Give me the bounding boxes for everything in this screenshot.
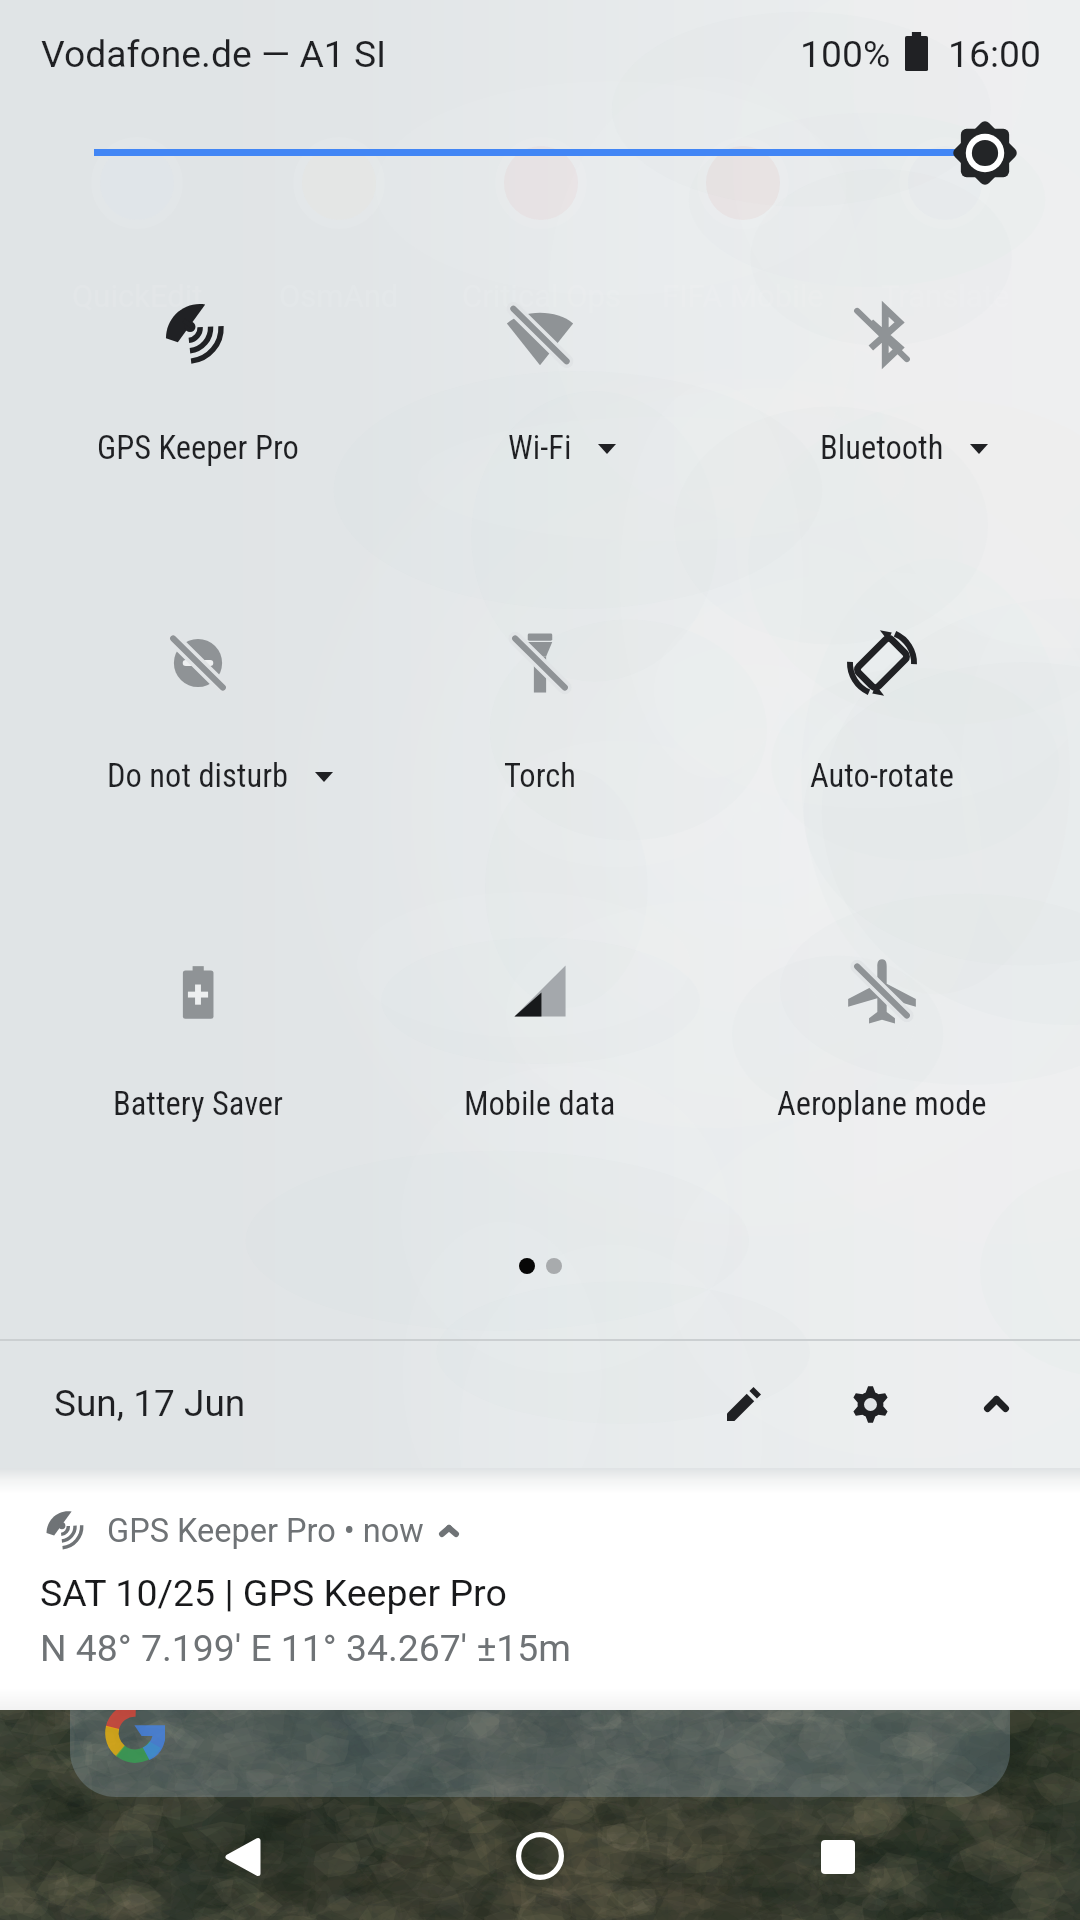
button[interactable]: Mobile data xyxy=(369,861,711,1189)
button[interactable]: Home xyxy=(470,1821,610,1891)
button[interactable]: Auto-rotate xyxy=(711,533,1053,861)
button[interactable]: Battery Saver xyxy=(27,861,369,1189)
staticText: Mobile data xyxy=(464,1085,616,1123)
button[interactable]: Wi-Fi xyxy=(369,205,711,533)
button[interactable]: Aeroplane mode xyxy=(711,861,1053,1189)
staticText: Critical Ops xyxy=(462,278,621,314)
staticText: SAT 10/25 | GPS Keeper Pro xyxy=(40,1571,507,1615)
staticText: Vodafone.de — A1 SI xyxy=(41,32,387,76)
staticText: QuickEdit xyxy=(72,278,203,314)
staticText: Wi-Fi xyxy=(508,429,572,467)
button[interactable]: Back xyxy=(172,1822,312,1892)
button[interactable]: Settings xyxy=(825,1359,915,1449)
staticText: Aeroplane mode xyxy=(777,1085,987,1123)
button[interactable]: Collapse xyxy=(951,1359,1041,1449)
staticText: Sun, 17 Jun xyxy=(54,1382,246,1425)
button[interactable]: Brightness xyxy=(951,119,1019,187)
staticText: 100% xyxy=(800,32,891,76)
staticText: Bluetooth xyxy=(820,429,944,467)
button[interactable]: GPS Keeper Pro • now xyxy=(0,1468,1080,1710)
staticText: Torch xyxy=(504,757,576,795)
button[interactable]: Recents xyxy=(768,1822,908,1892)
button[interactable]: Torch xyxy=(369,533,711,861)
staticText: Do not disturb xyxy=(107,757,289,795)
button[interactable]: Do not disturb xyxy=(27,533,369,861)
button[interactable]: GPS Keeper Pro xyxy=(27,205,369,533)
staticText: 16:00 xyxy=(948,32,1041,76)
staticText: Auto-rotate xyxy=(810,757,954,795)
button[interactable]: Bluetooth xyxy=(711,205,1053,533)
staticText: GPS Keeper Pro • now xyxy=(107,1512,424,1550)
button[interactable] xyxy=(70,1667,1010,1797)
button[interactable]: Edit xyxy=(699,1359,789,1449)
staticText: Battery Saver xyxy=(113,1085,283,1123)
staticText: Translate xyxy=(881,278,1010,314)
staticText: N 48° 7.199' E 11° 34.267' ±15m xyxy=(40,1626,571,1670)
staticText: GPS Keeper Pro xyxy=(97,429,299,467)
